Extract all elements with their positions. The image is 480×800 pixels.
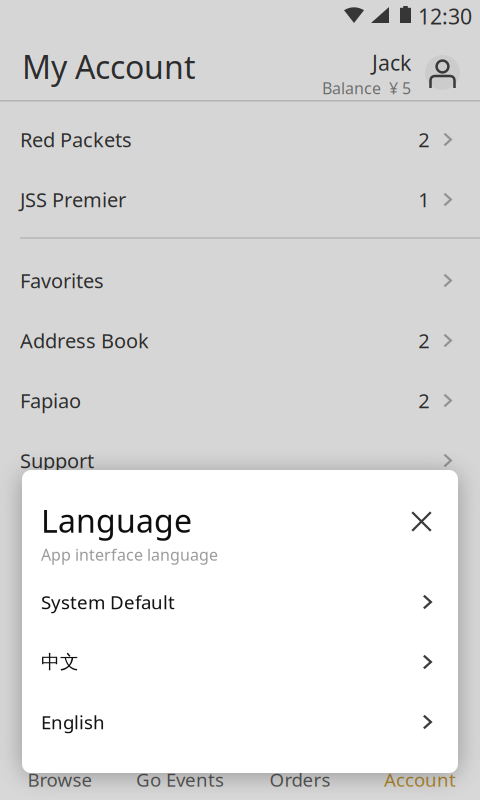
staticText: Jack <box>372 48 411 76</box>
staticText: My Account <box>22 45 196 88</box>
staticText: English <box>41 710 105 734</box>
staticText: App interface language <box>41 544 218 565</box>
button[interactable]: Favorites <box>0 250 480 310</box>
staticText: Browse <box>27 767 92 792</box>
button[interactable]: Support <box>0 430 480 490</box>
staticText: 2 <box>418 327 429 354</box>
staticText: 中文 <box>41 650 79 673</box>
staticText: Go Events <box>136 767 224 792</box>
button[interactable]: Go Events <box>120 760 240 800</box>
staticText: 1 <box>418 186 429 213</box>
button[interactable]: Orders <box>240 760 360 800</box>
button[interactable]: 中文 <box>22 632 458 692</box>
staticText: 12:30 <box>418 2 472 30</box>
button[interactable]: Close <box>402 502 441 541</box>
staticText: Language <box>41 499 192 541</box>
staticText: Fapiao <box>20 387 81 414</box>
button[interactable]: JSS Premier <box>0 169 480 229</box>
button[interactable]: System Default <box>22 572 458 632</box>
staticText: Red Packets <box>20 126 132 153</box>
button[interactable]: Fapiao <box>0 370 480 430</box>
button[interactable]: Address Book <box>0 310 480 370</box>
staticText: Favorites <box>20 267 104 294</box>
button[interactable]: English <box>22 692 458 752</box>
staticText: Support <box>20 447 94 474</box>
button[interactable]: Red Packets <box>0 109 480 169</box>
staticText: System Default <box>41 590 175 614</box>
staticText: Account <box>384 767 456 792</box>
button[interactable]: Account <box>360 760 480 800</box>
staticText: 2 <box>418 387 429 414</box>
staticText: Orders <box>269 767 330 792</box>
staticText: 2 <box>418 126 429 153</box>
staticText: JSS Premier <box>20 186 126 213</box>
staticText: Balance ¥ 5 <box>322 77 411 99</box>
button[interactable]: Browse <box>0 760 120 800</box>
staticText: Address Book <box>20 327 149 354</box>
